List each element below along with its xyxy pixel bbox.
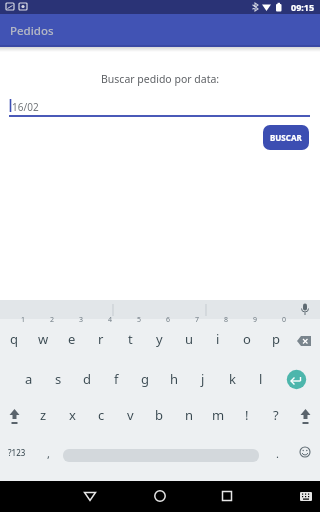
button[interactable]: k bbox=[218, 368, 246, 390]
button[interactable]: g bbox=[131, 368, 159, 390]
button[interactable]: o bbox=[233, 328, 261, 350]
staticText: 09:15 bbox=[291, 1, 315, 13]
staticText: p bbox=[272, 330, 280, 348]
staticText: 16/02 bbox=[12, 100, 39, 114]
staticText: 4 bbox=[108, 315, 113, 325]
staticText: b bbox=[155, 406, 163, 424]
staticText: x bbox=[69, 406, 76, 424]
staticText: u bbox=[185, 330, 194, 348]
button[interactable] bbox=[212, 481, 242, 512]
staticText: o bbox=[243, 330, 251, 348]
staticText: , bbox=[47, 446, 50, 461]
staticText: BUSCAR bbox=[270, 132, 302, 143]
button[interactable]: c bbox=[87, 404, 115, 426]
button[interactable]: x bbox=[58, 404, 86, 426]
staticText: k bbox=[229, 370, 236, 388]
staticText: c bbox=[98, 406, 105, 424]
button[interactable]: b bbox=[145, 404, 173, 426]
button[interactable] bbox=[287, 370, 307, 390]
staticText: r bbox=[98, 330, 104, 348]
staticText: 7 bbox=[195, 315, 200, 325]
button[interactable]: ? bbox=[262, 404, 290, 426]
staticText: i bbox=[216, 330, 220, 348]
staticText: t bbox=[128, 330, 133, 348]
staticText: 5 bbox=[137, 315, 142, 325]
button[interactable]: e bbox=[58, 328, 86, 350]
button[interactable]: . bbox=[263, 442, 291, 464]
staticText: 8 bbox=[224, 315, 229, 325]
button[interactable]: , bbox=[34, 442, 62, 464]
staticText: y bbox=[156, 330, 163, 348]
button[interactable]: j bbox=[189, 368, 217, 390]
button[interactable] bbox=[145, 481, 175, 512]
staticText: z bbox=[40, 406, 47, 424]
staticText: 0 bbox=[282, 315, 287, 325]
staticText: j bbox=[201, 370, 205, 388]
button[interactable]: w bbox=[29, 328, 57, 350]
staticText: w bbox=[38, 330, 49, 348]
staticText: n bbox=[185, 406, 194, 424]
button[interactable]: i bbox=[204, 328, 232, 350]
button[interactable] bbox=[295, 442, 315, 462]
button[interactable]: v bbox=[116, 404, 144, 426]
button[interactable]: q bbox=[0, 328, 28, 350]
button[interactable] bbox=[75, 481, 105, 512]
staticText: v bbox=[127, 406, 134, 424]
staticText: l bbox=[259, 370, 263, 388]
staticText: 1 bbox=[21, 315, 26, 325]
staticText: h bbox=[170, 370, 179, 388]
button[interactable]: BUSCAR bbox=[263, 125, 309, 150]
button[interactable]: u bbox=[175, 328, 203, 350]
staticText: ? bbox=[273, 406, 279, 424]
button[interactable]: l bbox=[247, 368, 275, 390]
button[interactable]: m bbox=[204, 404, 232, 426]
staticText: 2 bbox=[50, 315, 55, 325]
button[interactable]: ?123 bbox=[2, 442, 32, 462]
staticText: ?123 bbox=[8, 447, 26, 458]
button[interactable]: t bbox=[116, 328, 144, 350]
button[interactable]: h bbox=[160, 368, 188, 390]
staticText: 6 bbox=[166, 315, 171, 325]
staticText: 3 bbox=[79, 315, 84, 325]
staticText: Buscar pedido por data: bbox=[101, 72, 220, 86]
staticText: m bbox=[212, 406, 225, 424]
button[interactable]: p bbox=[262, 328, 290, 350]
staticText: d bbox=[83, 370, 91, 388]
staticText: . bbox=[276, 446, 279, 461]
button[interactable]: 16/02 bbox=[0, 96, 320, 118]
staticText: f bbox=[114, 370, 119, 388]
button[interactable] bbox=[2, 405, 27, 425]
staticText: e bbox=[68, 330, 76, 348]
button[interactable]: z bbox=[29, 404, 57, 426]
staticText: 9 bbox=[253, 315, 258, 325]
button[interactable]: r bbox=[87, 328, 115, 350]
staticText: s bbox=[55, 370, 62, 388]
button[interactable]: n bbox=[175, 404, 203, 426]
button[interactable]: y bbox=[145, 328, 173, 350]
button[interactable]: s bbox=[44, 368, 72, 390]
staticText: ! bbox=[245, 406, 249, 424]
staticText: a bbox=[25, 370, 33, 388]
button[interactable]: d bbox=[73, 368, 101, 390]
staticText: q bbox=[10, 330, 18, 348]
button[interactable] bbox=[292, 330, 318, 350]
button[interactable]: f bbox=[102, 368, 130, 390]
button[interactable]: ! bbox=[233, 404, 261, 426]
staticText: g bbox=[141, 370, 149, 388]
button[interactable] bbox=[293, 405, 318, 425]
staticText: Pedidos bbox=[10, 23, 54, 39]
button[interactable]: a bbox=[15, 368, 43, 390]
